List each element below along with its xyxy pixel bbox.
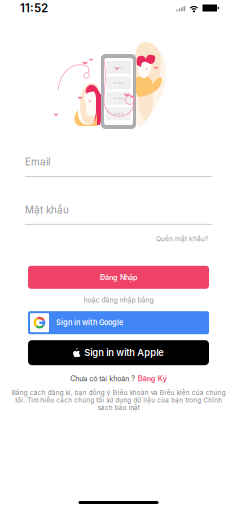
staticText: Quên mật khẩu? — [156, 235, 208, 243]
staticText: hoặc đăng nhập bằng — [83, 296, 153, 304]
staticText: Chưa có tài khoản ? — [70, 374, 135, 383]
button[interactable]: Sign in with Apple — [28, 340, 209, 365]
staticText: Bằng cách đăng kí, bạn đồng ý Điều khoản… — [11, 389, 225, 412]
button[interactable]: Chưa có tài khoản ? — [70, 374, 167, 383]
staticText: Đăng Ký — [138, 374, 167, 383]
staticText: Sign in with Apple — [84, 347, 164, 358]
button[interactable]: Quên mật khẩu? — [156, 235, 208, 243]
staticText: Sign in with Google — [56, 318, 123, 327]
staticText: Đăng Nhập — [100, 273, 137, 282]
button[interactable]: Sign in with Google — [28, 311, 209, 334]
button[interactable]: Đăng Nhập — [28, 266, 209, 289]
staticText: Email — [25, 156, 50, 168]
staticText: Mật khẩu — [25, 204, 69, 216]
staticText: 11:52 — [20, 1, 48, 15]
